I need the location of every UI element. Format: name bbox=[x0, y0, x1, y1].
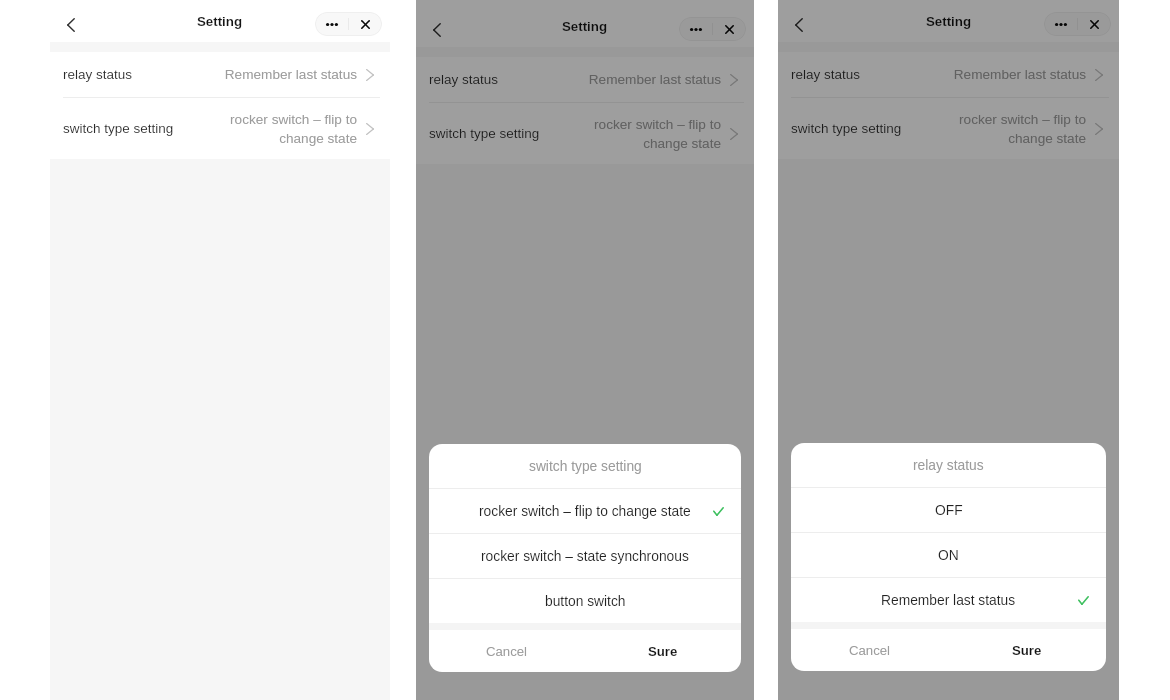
staticText: button switch bbox=[545, 594, 626, 609]
button[interactable]: Close bbox=[349, 12, 382, 36]
button[interactable]: Sure bbox=[585, 630, 741, 672]
staticText: Sure bbox=[648, 644, 678, 659]
button[interactable]: Cancel bbox=[791, 629, 948, 671]
button[interactable]: relay status bbox=[778, 52, 1119, 97]
button[interactable]: Back bbox=[56, 11, 85, 39]
staticText: switch type setting bbox=[429, 126, 540, 141]
staticText: ON bbox=[938, 548, 959, 563]
button[interactable]: Cancel bbox=[429, 630, 585, 672]
staticText: Cancel bbox=[486, 644, 528, 659]
button[interactable]: Close bbox=[1078, 12, 1111, 36]
staticText: Setting bbox=[197, 14, 243, 29]
staticText: relay status bbox=[429, 72, 499, 87]
staticText: switch type setting bbox=[529, 459, 642, 474]
staticText: rocker switch – flip to change state bbox=[223, 112, 357, 146]
button[interactable]: OFF bbox=[791, 488, 1106, 532]
button[interactable]: Sure bbox=[948, 629, 1106, 671]
staticText: Remember last status bbox=[223, 67, 357, 82]
staticText: Setting bbox=[926, 14, 972, 29]
staticText: relay status bbox=[913, 458, 984, 473]
button[interactable]: switch type setting bbox=[50, 98, 390, 159]
button[interactable]: rocker switch – state synchronous bbox=[429, 534, 741, 578]
button[interactable]: relay status bbox=[50, 52, 390, 97]
staticText: switch type setting bbox=[791, 121, 902, 136]
button[interactable]: More options bbox=[1044, 12, 1077, 36]
staticText: relay status bbox=[791, 67, 861, 82]
staticText: rocker switch – flip to change state bbox=[952, 112, 1086, 146]
staticText: rocker switch – flip to change state bbox=[479, 504, 691, 519]
button[interactable]: switch type setting bbox=[416, 103, 754, 164]
staticText: switch type setting bbox=[63, 121, 174, 136]
staticText: OFF bbox=[935, 503, 963, 518]
staticText: Cancel bbox=[849, 643, 891, 658]
staticText: rocker switch – flip to change state bbox=[587, 117, 721, 151]
button[interactable]: button switch bbox=[429, 579, 741, 623]
button[interactable]: relay status bbox=[416, 57, 754, 102]
staticText: relay status bbox=[63, 67, 133, 82]
button[interactable]: Close bbox=[713, 17, 746, 41]
button[interactable]: More options bbox=[679, 17, 712, 41]
button[interactable]: rocker switch – flip to change state bbox=[429, 489, 741, 533]
staticText: Remember last status bbox=[587, 72, 721, 87]
button[interactable]: Back bbox=[422, 16, 451, 44]
staticText: Setting bbox=[562, 19, 608, 34]
button[interactable]: ON bbox=[791, 533, 1106, 577]
button[interactable]: Back bbox=[784, 11, 813, 39]
staticText: rocker switch – state synchronous bbox=[481, 549, 689, 564]
button[interactable]: Remember last status bbox=[791, 578, 1106, 622]
staticText: Remember last status bbox=[881, 593, 1016, 608]
staticText: Remember last status bbox=[952, 67, 1086, 82]
button[interactable]: More options bbox=[315, 12, 348, 36]
button[interactable]: switch type setting bbox=[778, 98, 1119, 159]
staticText: Sure bbox=[1012, 643, 1042, 658]
